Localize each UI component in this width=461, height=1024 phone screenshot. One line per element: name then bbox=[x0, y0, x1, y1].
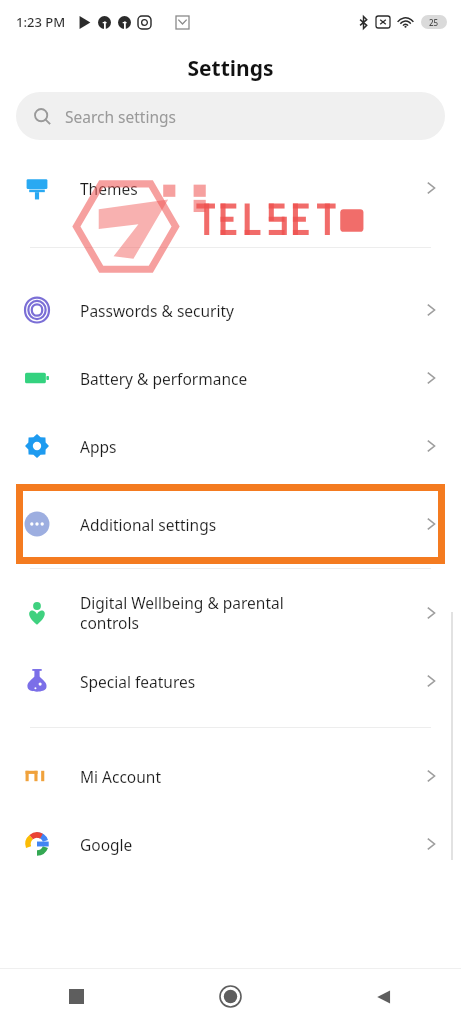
staticText: Search settings bbox=[65, 106, 176, 127]
button[interactable]: Special features bbox=[0, 647, 461, 715]
staticText: Battery & performance bbox=[80, 368, 423, 389]
staticText: Additional settings bbox=[80, 514, 423, 535]
button[interactable]: Themes bbox=[0, 154, 461, 222]
button[interactable]: Digital Wellbeing & parental controls bbox=[0, 579, 461, 647]
button[interactable]: Back bbox=[307, 969, 461, 1024]
button[interactable]: Mi Account bbox=[0, 742, 461, 810]
button[interactable]: Passwords & security bbox=[0, 276, 461, 344]
button[interactable]: Battery & performance bbox=[0, 344, 461, 412]
staticText: Themes bbox=[80, 178, 423, 199]
button[interactable]: Additional settings bbox=[0, 490, 461, 558]
staticText: Mi Account bbox=[80, 766, 423, 787]
staticText: Digital Wellbeing & parental controls bbox=[80, 592, 423, 634]
button[interactable]: Search settings bbox=[16, 92, 445, 140]
staticText: Special features bbox=[80, 671, 423, 692]
staticText: Passwords & security bbox=[80, 300, 423, 321]
button[interactable]: Google bbox=[0, 810, 461, 878]
button[interactable]: Recents bbox=[0, 969, 153, 1024]
staticText: Settings bbox=[187, 54, 274, 83]
staticText: 1:23 PM bbox=[16, 13, 66, 31]
button[interactable]: Home bbox=[153, 969, 307, 1024]
staticText: Apps bbox=[80, 436, 423, 457]
staticText: 25 bbox=[429, 17, 439, 28]
staticText: Google bbox=[80, 834, 423, 855]
button[interactable]: Apps bbox=[0, 412, 461, 480]
